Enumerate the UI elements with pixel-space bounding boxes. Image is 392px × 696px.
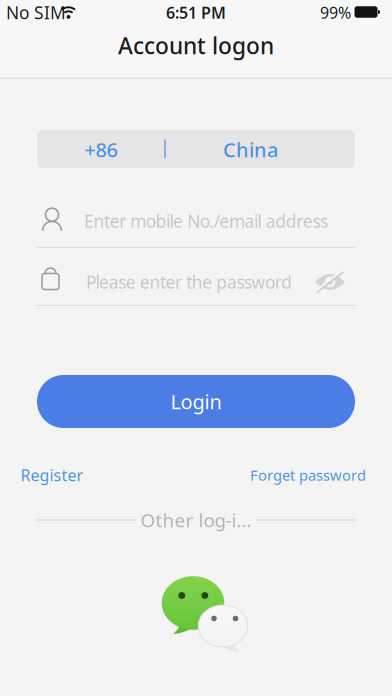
button[interactable]: Log in with WeChat xyxy=(158,563,246,660)
button[interactable]: +86 xyxy=(37,130,355,168)
staticText: Enter mobile No./email address xyxy=(84,209,328,232)
staticText: Account logon xyxy=(118,30,274,60)
staticText: Login xyxy=(170,388,221,415)
button[interactable]: Forget password xyxy=(250,465,366,485)
staticText: 99% xyxy=(320,2,351,23)
staticText: No SIM xyxy=(6,1,66,24)
button[interactable]: Show password xyxy=(309,265,351,299)
staticText: Register xyxy=(20,464,83,486)
staticText: Please enter the password xyxy=(86,270,292,293)
button[interactable]: Register xyxy=(20,464,83,486)
button[interactable]: Please enter the password xyxy=(37,247,355,305)
staticText: Other log-i… xyxy=(140,508,251,532)
button[interactable]: Login xyxy=(37,375,355,428)
button[interactable]: Enter mobile No./email address xyxy=(37,192,355,247)
staticText: +86 xyxy=(84,136,117,163)
staticText: China xyxy=(223,136,278,163)
staticText: Forget password xyxy=(250,465,366,485)
staticText: 6:51 PM xyxy=(166,2,226,23)
